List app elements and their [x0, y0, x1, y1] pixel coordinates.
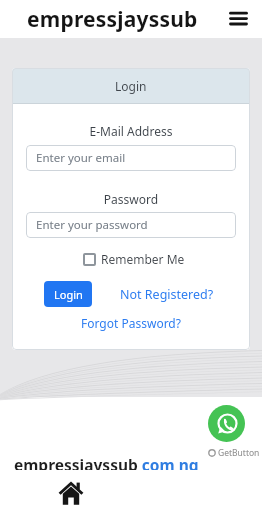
staticText: empressjayssub com ng: [14, 454, 199, 475]
button[interactable]: Not Registered?: [120, 286, 214, 303]
button[interactable]: [208, 405, 245, 442]
staticText: GetButton: [218, 447, 260, 459]
button[interactable]: [57, 479, 85, 507]
button[interactable]: Forgot Password?: [12, 315, 250, 331]
staticText: Enter your password: [36, 217, 148, 233]
staticText: Password: [12, 191, 250, 207]
staticText: Enter your email: [36, 150, 126, 166]
staticText: Login: [54, 287, 83, 302]
button[interactable]: Login: [44, 281, 92, 307]
button[interactable]: Enter your email: [26, 145, 236, 171]
button[interactable]: [226, 7, 250, 31]
button[interactable]: Remember Me: [12, 251, 250, 267]
staticText: Remember Me: [101, 251, 185, 267]
button[interactable]: Enter your password: [26, 212, 236, 238]
staticText: Login: [115, 78, 147, 94]
staticText: E-Mail Address: [12, 123, 250, 139]
button[interactable]: empressjayssub: [27, 5, 198, 34]
